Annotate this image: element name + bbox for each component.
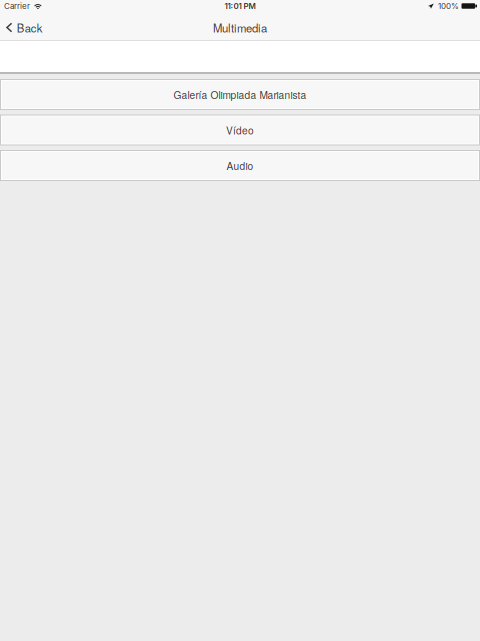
staticText: Audio xyxy=(226,158,253,173)
button[interactable]: Vídeo xyxy=(0,114,480,145)
staticText: 11:01 PM xyxy=(224,1,255,11)
button[interactable]: Audio xyxy=(0,150,480,181)
staticText: Back xyxy=(17,19,43,36)
staticText: 100% xyxy=(438,1,459,11)
staticText: Galería Olimpiada Marianista xyxy=(173,87,306,102)
staticText: Vídeo xyxy=(226,123,254,137)
button[interactable]: Back xyxy=(0,20,51,35)
staticText: Carrier xyxy=(4,1,30,11)
button[interactable]: Galería Olimpiada Marianista xyxy=(0,79,480,110)
staticText: Multimedia xyxy=(213,19,267,36)
